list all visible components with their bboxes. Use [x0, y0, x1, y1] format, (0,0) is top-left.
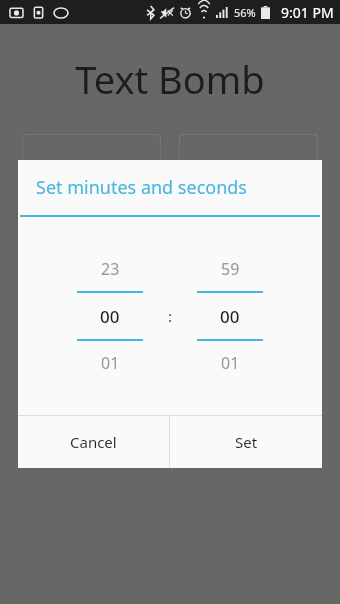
staticText: Set: [235, 432, 258, 452]
staticText: 01: [221, 352, 240, 374]
button[interactable]: Cancel: [18, 416, 169, 468]
staticText: 9:01 PM: [281, 3, 334, 22]
button[interactable]: Seconds: [187, 247, 273, 385]
button[interactable]: Minutes: [67, 247, 153, 385]
staticText: 56%: [234, 5, 256, 20]
staticText: 23: [101, 258, 120, 280]
button[interactable]: [179, 134, 318, 178]
staticText: 01: [101, 352, 120, 374]
button[interactable]: [22, 134, 161, 178]
staticText: Text Bomb: [75, 53, 265, 105]
button[interactable]: Set: [170, 416, 322, 468]
staticText: 00: [220, 305, 240, 328]
staticText: Cancel: [70, 432, 117, 452]
staticText: 00: [100, 305, 120, 328]
staticText: :: [168, 306, 173, 326]
staticText: Set minutes and seconds: [36, 175, 247, 200]
staticText: 59: [221, 258, 240, 280]
